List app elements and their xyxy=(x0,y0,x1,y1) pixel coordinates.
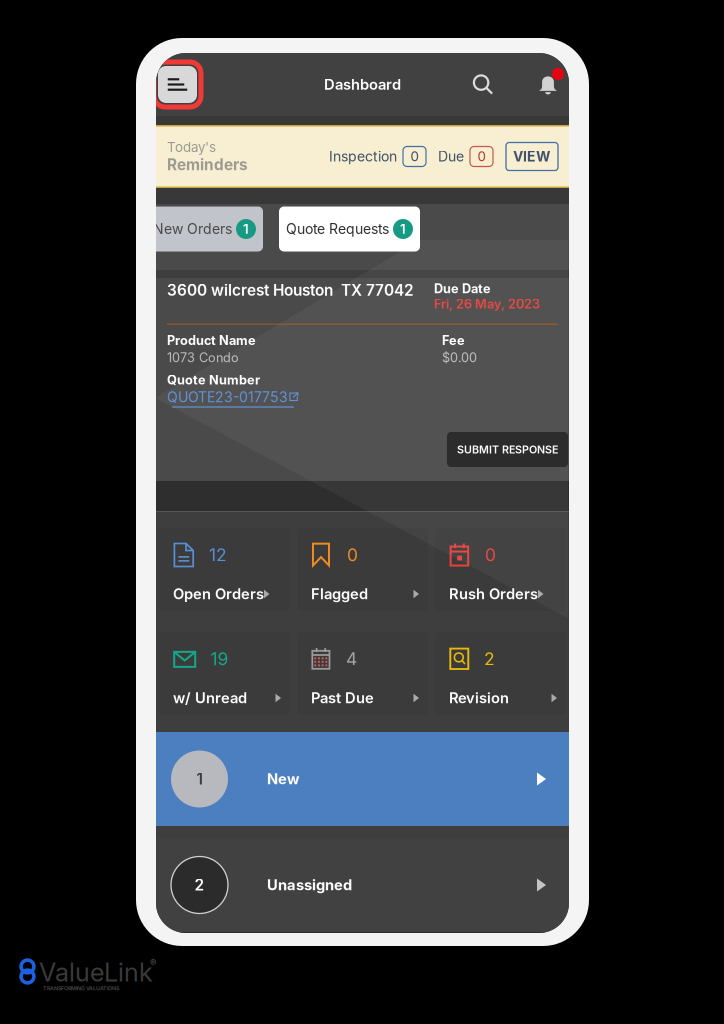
staticText: New xyxy=(267,770,299,788)
staticText: 0 xyxy=(477,148,485,164)
button[interactable]: Search xyxy=(465,64,501,104)
button[interactable]: VIEW xyxy=(506,142,558,170)
staticText: Quote Requests xyxy=(286,220,389,237)
staticText: Product Name xyxy=(167,333,256,348)
staticText: w/ Unread xyxy=(173,689,247,707)
staticText: 1 xyxy=(196,770,202,788)
staticText: ValueLink xyxy=(39,957,153,988)
button[interactable]: 0 xyxy=(297,528,428,611)
staticText: Fri, 26 May, 2023 xyxy=(434,296,540,312)
staticText: 4 xyxy=(346,648,357,669)
button[interactable]: QUOTE23-017753 xyxy=(167,389,299,407)
button[interactable]: 0 xyxy=(435,528,566,611)
button[interactable]: 19 xyxy=(159,632,290,715)
staticText: 2 xyxy=(484,648,495,669)
staticText: 3600 wilcrest Houston TX 77042 xyxy=(167,281,414,300)
button[interactable]: 12 xyxy=(159,528,290,611)
button[interactable]: 2 xyxy=(435,632,566,715)
staticText: TRANSFORMING VALUATIONS xyxy=(43,985,119,991)
staticText: Past Due xyxy=(311,689,374,707)
staticText: 0 xyxy=(347,544,358,565)
staticText: Open Orders xyxy=(173,585,264,603)
staticText: 1 xyxy=(243,221,249,237)
staticText: Inspection xyxy=(329,148,397,165)
staticText: Today's xyxy=(167,139,216,155)
staticText: 19 xyxy=(210,648,228,669)
button[interactable]: Menu xyxy=(154,62,201,107)
staticText: 12 xyxy=(209,544,227,565)
staticText: Reminders xyxy=(167,155,248,174)
button[interactable]: Quote Requests xyxy=(279,206,420,251)
staticText: ® xyxy=(150,957,156,968)
staticText: Unassigned xyxy=(267,876,352,894)
staticText: QUOTE23-017753 xyxy=(167,389,288,405)
button[interactable]: 1 xyxy=(156,732,569,826)
staticText: 1073 Condo xyxy=(167,350,239,365)
button[interactable]: New Orders xyxy=(146,206,263,251)
staticText: Flagged xyxy=(311,585,368,603)
staticText: 1 xyxy=(400,221,406,237)
staticText: Fee xyxy=(442,333,465,348)
staticText: SUBMIT RESPONSE xyxy=(457,443,558,456)
staticText: 2 xyxy=(194,876,204,894)
staticText: Quote Number xyxy=(167,372,260,388)
button[interactable]: Notifications xyxy=(530,64,566,104)
staticText: $0.00 xyxy=(442,350,477,365)
button[interactable]: 4 xyxy=(297,632,428,715)
staticText: 0 xyxy=(485,544,496,565)
button[interactable]: SUBMIT RESPONSE xyxy=(447,432,568,467)
staticText: Revision xyxy=(449,689,509,707)
staticText: Rush Orders xyxy=(449,585,538,603)
staticText: VIEW xyxy=(513,148,551,165)
staticText: Due xyxy=(438,148,464,165)
staticText: Dashboard xyxy=(324,76,401,93)
staticText: 0 xyxy=(410,148,418,164)
staticText: New Orders xyxy=(153,220,232,237)
staticText: Due Date xyxy=(434,281,491,296)
button[interactable]: 2 xyxy=(156,838,569,932)
